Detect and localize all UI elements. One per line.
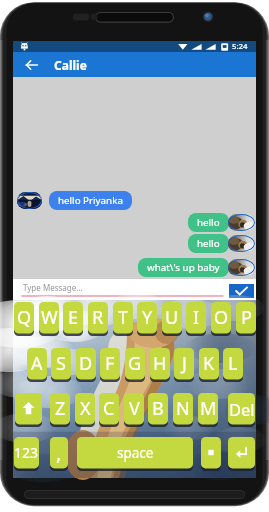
button[interactable]: X — [75, 393, 95, 424]
staticText: X — [80, 396, 91, 421]
staticText: J — [182, 351, 187, 376]
button[interactable]: Y — [137, 302, 157, 333]
staticText: Z — [55, 396, 66, 421]
button[interactable]: A — [27, 348, 47, 379]
button[interactable]: B — [148, 393, 168, 424]
button[interactable]: space — [77, 437, 193, 468]
button[interactable]: S — [51, 348, 71, 379]
button[interactable]: Z — [50, 393, 70, 424]
staticText: Y — [142, 305, 153, 330]
staticText: Del — [229, 398, 255, 420]
staticText: D — [79, 351, 93, 376]
button[interactable]: N — [173, 393, 193, 424]
staticText: O — [214, 305, 229, 330]
button[interactable]: I — [186, 302, 206, 333]
button[interactable]: U — [162, 302, 182, 333]
button[interactable]: D — [76, 348, 96, 379]
staticText: hello Priyanka — [58, 194, 123, 207]
button[interactable]: Shift — [15, 393, 42, 424]
staticText: Callie — [54, 57, 87, 73]
staticText: C — [103, 396, 115, 421]
button[interactable]: hello — [188, 234, 229, 253]
staticText: V — [129, 396, 140, 421]
button[interactable]: J — [174, 348, 194, 379]
staticText: hello — [197, 237, 220, 250]
staticText: W — [41, 305, 58, 330]
staticText: P — [241, 305, 252, 330]
button[interactable]: K — [199, 348, 219, 379]
staticText: G — [128, 351, 142, 376]
staticText: H — [153, 351, 167, 376]
button[interactable]: hello Priyanka — [49, 191, 132, 210]
button[interactable]: P — [236, 302, 256, 333]
button[interactable]: T — [113, 302, 133, 333]
button[interactable]: G — [125, 348, 145, 379]
button[interactable]: hello — [188, 213, 229, 232]
staticText: F — [105, 351, 115, 376]
staticText: N — [176, 396, 190, 421]
staticText: R — [92, 305, 104, 330]
button[interactable]: E — [63, 302, 83, 333]
staticText: , — [56, 439, 62, 466]
button[interactable]: Send — [229, 284, 254, 298]
button[interactable]: F — [100, 348, 120, 379]
staticText: Q — [17, 305, 32, 330]
button[interactable]: H — [150, 348, 170, 379]
button[interactable]: what\'s up baby — [138, 258, 229, 277]
staticText: 5:24 — [232, 41, 248, 52]
staticText: S — [56, 351, 66, 376]
staticText: A — [31, 351, 43, 376]
button[interactable]: Del — [228, 393, 255, 424]
button[interactable]: Period — [201, 437, 221, 468]
staticText: what\'s up baby — [147, 261, 220, 274]
button[interactable]: , — [50, 437, 68, 468]
button[interactable]: Back — [18, 54, 39, 76]
button[interactable]: Enter — [228, 437, 255, 468]
staticText: I — [193, 305, 200, 330]
staticText: U — [165, 305, 179, 330]
staticText: E — [68, 305, 79, 330]
staticText: space — [117, 444, 154, 462]
staticText: B — [152, 396, 164, 421]
button[interactable]: V — [124, 393, 144, 424]
staticText: M — [200, 396, 217, 421]
button[interactable]: W — [39, 302, 59, 333]
staticText: 123 — [14, 443, 39, 462]
button[interactable]: 123 — [14, 437, 39, 468]
staticText: K — [203, 351, 215, 376]
button[interactable]: C — [99, 393, 119, 424]
staticText: L — [228, 351, 238, 376]
staticText: hello — [197, 216, 220, 229]
staticText: Type Message... — [23, 282, 83, 293]
button[interactable]: M — [198, 393, 218, 424]
button[interactable]: O — [211, 302, 231, 333]
button[interactable]: L — [223, 348, 243, 379]
button[interactable]: Q — [14, 302, 34, 333]
staticText: T — [118, 305, 129, 330]
button[interactable]: R — [88, 302, 108, 333]
